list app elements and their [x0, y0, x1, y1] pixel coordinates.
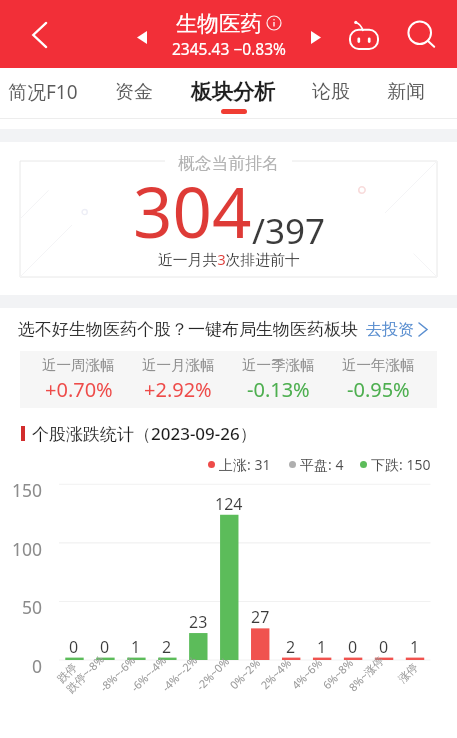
button[interactable]: Search — [397, 11, 445, 59]
staticText: 0 — [100, 636, 110, 658]
staticText: 跌停 — [54, 660, 80, 686]
button[interactable]: 资金 — [115, 68, 153, 119]
staticText: 27 — [251, 606, 270, 628]
staticText: 0%~2% — [226, 655, 264, 692]
staticText: 下跌: 150 — [371, 455, 431, 474]
staticText: 概念当前排名 — [178, 153, 279, 174]
staticText: 上涨: 31 — [219, 455, 271, 474]
staticText: 0 — [32, 654, 43, 678]
staticText: 2%~4% — [257, 655, 295, 692]
staticText: 1 — [317, 636, 327, 658]
staticText: 生物医药 — [176, 10, 262, 37]
staticText: 0 — [348, 636, 358, 658]
staticText: 50 — [22, 595, 43, 619]
button[interactable]: 简况F10 — [8, 68, 78, 119]
staticText: -0.95% — [347, 376, 410, 403]
staticText: 近一月涨幅 — [142, 356, 215, 374]
staticText: 论股 — [312, 80, 350, 104]
staticText: /397 — [252, 207, 326, 255]
button[interactable]: Previous sector — [126, 21, 158, 53]
staticText: -6%~-4% — [127, 652, 170, 695]
staticText: 选不好生物医药个股？一键布局生物医药板块 — [18, 319, 358, 340]
staticText: 平盘: 4 — [300, 455, 344, 474]
staticText: 1 — [410, 636, 420, 658]
staticText: 近一季涨幅 — [242, 356, 315, 374]
staticText: 6%~8% — [319, 655, 357, 692]
button[interactable]: Back — [12, 7, 68, 63]
staticText: 1 — [131, 636, 141, 658]
staticText: 4%~6% — [288, 655, 326, 692]
staticText: 去投资 — [366, 320, 414, 340]
button[interactable]: 板块分析 — [191, 68, 275, 119]
button[interactable]: 论股 — [312, 68, 350, 119]
staticText: +2.92% — [144, 376, 212, 403]
staticText: 100 — [12, 537, 43, 561]
staticText: +0.70% — [45, 376, 113, 403]
staticText: -0.13% — [247, 376, 310, 403]
staticText: 2345.43 −0.83% — [172, 38, 286, 59]
button[interactable]: Next sector — [300, 21, 332, 53]
staticText: -8%~-6% — [96, 652, 139, 695]
staticText: 2 — [286, 636, 296, 658]
staticText: -4%~-2% — [158, 652, 201, 695]
button[interactable]: 新闻 — [387, 68, 425, 119]
staticText: 0 — [69, 636, 79, 658]
button[interactable]: AI assistant — [340, 12, 388, 60]
staticText: 个股涨跌统计（2023-09-26） — [32, 422, 257, 445]
staticText: 23 — [189, 611, 208, 633]
staticText: 304 — [133, 164, 252, 258]
staticText: 124 — [215, 493, 243, 515]
staticText: 近一月共3次排进前十 — [158, 249, 300, 269]
staticText: -2%~0% — [193, 654, 232, 693]
staticText: 新闻 — [387, 80, 425, 104]
staticText: 涨停 — [395, 660, 421, 686]
staticText: 简况F10 — [8, 79, 78, 105]
staticText: 150 — [12, 478, 43, 502]
staticText: 0 — [379, 636, 389, 658]
staticText: 近一年涨幅 — [342, 356, 415, 374]
staticText: 跌停~-8% — [63, 651, 107, 696]
staticText: 近一周涨幅 — [42, 356, 115, 374]
staticText: 2 — [162, 636, 172, 658]
staticText: 板块分析 — [191, 79, 275, 105]
staticText: 8%~涨停 — [345, 653, 387, 694]
staticText: 资金 — [115, 80, 153, 104]
button[interactable]: 选不好生物医药个股？一键布局生物医药板块 — [0, 308, 457, 351]
